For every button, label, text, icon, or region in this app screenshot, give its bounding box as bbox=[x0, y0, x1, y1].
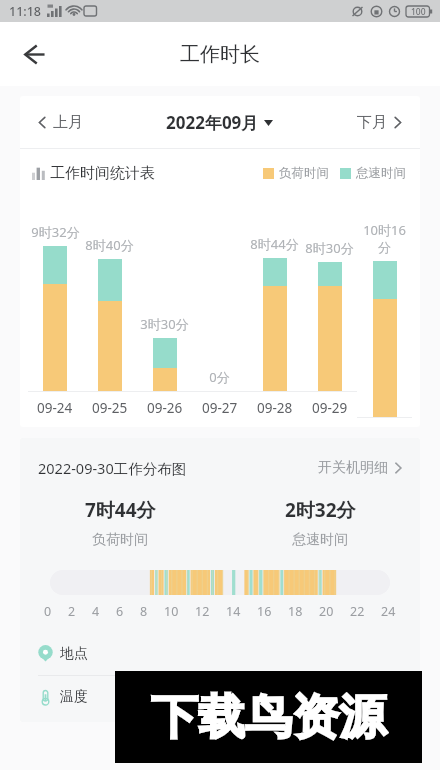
button[interactable]: Back bbox=[8, 29, 58, 79]
staticText: 下载鸟资源 bbox=[151, 688, 386, 747]
button[interactable]: 下月 bbox=[355, 105, 406, 140]
button[interactable]: 开关机明细 bbox=[314, 455, 408, 481]
staticText: 工作时间统计表 bbox=[50, 164, 155, 183]
staticText: 8时44分 bbox=[250, 235, 299, 253]
button[interactable]: 地点 bbox=[20, 633, 420, 675]
staticText: 16 bbox=[257, 603, 272, 620]
button[interactable]: 温度 bbox=[20, 676, 420, 718]
staticText: 11:18 bbox=[9, 3, 42, 20]
staticText: 8时30分 bbox=[305, 239, 354, 257]
staticText: 22 bbox=[350, 603, 365, 620]
staticText: 2022年09月 bbox=[166, 111, 259, 134]
staticText: 开关机明细 bbox=[318, 459, 388, 477]
staticText: 工作时长 bbox=[180, 42, 260, 67]
button[interactable]: 2022年09月 bbox=[164, 103, 275, 142]
staticText: 18 bbox=[288, 603, 303, 620]
staticText: 24 bbox=[381, 603, 396, 620]
button[interactable]: 上月 bbox=[34, 105, 85, 140]
staticText: 怠速时间 bbox=[292, 531, 348, 549]
staticText: 2时32分 bbox=[285, 497, 356, 523]
staticText: 20 bbox=[319, 603, 334, 620]
staticText: 4 bbox=[92, 603, 100, 620]
staticText: 地点 bbox=[60, 645, 88, 663]
staticText: 09-27 bbox=[202, 399, 238, 417]
button[interactable]: 负荷时间 bbox=[263, 165, 329, 181]
staticText: 温度 bbox=[60, 688, 88, 706]
staticText: 12 bbox=[195, 603, 210, 620]
staticText: 10 bbox=[164, 603, 179, 620]
staticText: 负荷时间 bbox=[279, 165, 329, 181]
staticText: 09-29 bbox=[312, 399, 348, 417]
staticText: 上月 bbox=[53, 113, 83, 132]
button[interactable]: 怠速时间 bbox=[340, 165, 406, 181]
staticText: 09-28 bbox=[257, 399, 293, 417]
staticText: 09-24 bbox=[37, 399, 73, 417]
staticText: 09-25 bbox=[92, 399, 128, 417]
staticText: 下月 bbox=[357, 113, 387, 132]
staticText: 7时44分 bbox=[85, 497, 156, 523]
staticText: 3时30分 bbox=[140, 315, 189, 333]
staticText: 6 bbox=[116, 603, 124, 620]
staticText: 14 bbox=[226, 603, 241, 620]
staticText: 0 bbox=[44, 603, 52, 620]
staticText: 2022-09-30工作分布图 bbox=[38, 458, 187, 478]
staticText: 8时40分 bbox=[85, 236, 134, 254]
staticText: 100 bbox=[411, 6, 426, 18]
staticText: 09-26 bbox=[147, 399, 183, 417]
staticText: 0分 bbox=[209, 368, 230, 386]
staticText: 8 bbox=[140, 603, 148, 620]
staticText: 怠速时间 bbox=[356, 165, 406, 181]
staticText: 2 bbox=[68, 603, 76, 620]
staticText: 10时16分 bbox=[357, 221, 412, 256]
staticText: 负荷时间 bbox=[92, 531, 148, 549]
staticText: 9时32分 bbox=[31, 223, 80, 241]
